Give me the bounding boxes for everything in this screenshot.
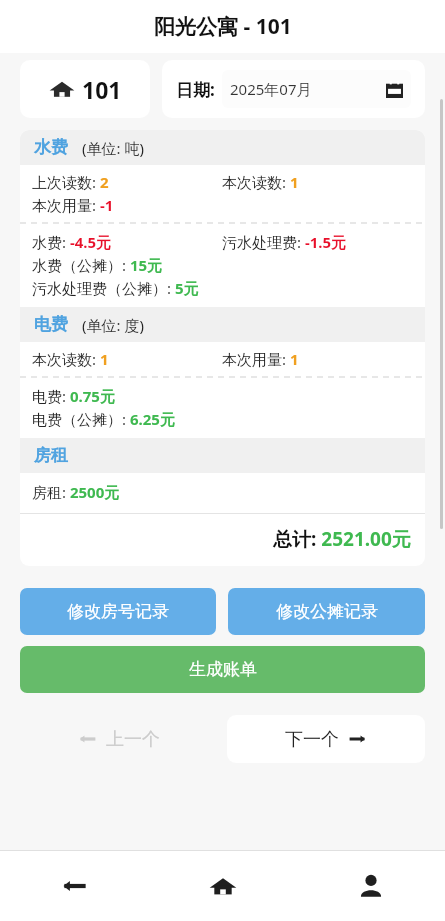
button[interactable]: Home <box>149 851 297 921</box>
staticText: 污水处理费: -1.5元 <box>222 232 347 252</box>
staticText: 修改房号记录 <box>67 601 169 622</box>
staticText: 水费: -4.5元 <box>32 232 112 252</box>
button[interactable]: 修改房号记录 <box>20 588 216 635</box>
button[interactable]: 101 <box>20 60 150 118</box>
staticText: 本次读数: 1 <box>222 172 299 192</box>
staticText: 房租 <box>34 445 68 466</box>
staticText: 本次用量: 1 <box>222 349 299 369</box>
staticText: 房租: 2500元 <box>32 482 120 502</box>
button[interactable]: Profile <box>297 851 445 921</box>
staticText: 本次读数: 1 <box>32 349 109 369</box>
staticText: (单位: 度) <box>82 315 144 335</box>
button[interactable]: 上一个 <box>20 715 217 763</box>
staticText: 修改公摊记录 <box>276 601 378 622</box>
staticText: 总计: 2521.00元 <box>273 526 411 552</box>
staticText: 污水处理费（公摊）: 5元 <box>32 278 199 298</box>
staticText: 电费: 0.75元 <box>32 386 115 406</box>
staticText: 上次读数: 2 <box>32 172 109 192</box>
staticText: 日期: <box>176 78 215 101</box>
button[interactable]: Back <box>0 851 149 921</box>
staticText: 水费（公摊）: 15元 <box>32 255 163 275</box>
staticText: 2025年07月 <box>230 79 312 99</box>
button[interactable]: 2025年07月 <box>222 70 411 108</box>
staticText: 水费 <box>34 137 68 158</box>
staticText: 上一个 <box>106 728 160 751</box>
staticText: 电费 <box>34 314 68 335</box>
staticText: 电费（公摊）: 6.25元 <box>32 409 175 429</box>
staticText: 阳光公寓 - 101 <box>154 12 292 41</box>
button[interactable]: 生成账单 <box>20 646 425 693</box>
button[interactable]: 下一个 <box>227 715 425 763</box>
staticText: 101 <box>82 74 122 105</box>
other: Pick date <box>386 81 403 98</box>
button[interactable]: 修改公摊记录 <box>228 588 425 635</box>
staticText: (单位: 吨) <box>82 138 144 158</box>
staticText: 下一个 <box>285 728 339 751</box>
staticText: 本次用量: -1 <box>32 195 114 215</box>
staticText: 生成账单 <box>189 659 257 680</box>
